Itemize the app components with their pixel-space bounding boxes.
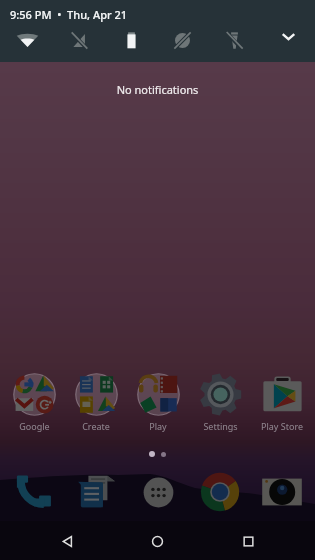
button[interactable]: Home — [125, 522, 189, 560]
button[interactable]: Create — [65, 373, 127, 432]
staticText: Play Store — [261, 420, 303, 432]
button[interactable]: Recents — [216, 522, 280, 560]
button[interactable]: Play Store — [251, 373, 313, 432]
button[interactable]: Chrome — [189, 470, 251, 514]
button[interactable]: Mobile data off — [64, 25, 94, 55]
staticText: No notifications — [0, 82, 315, 97]
staticText: Google — [19, 420, 50, 432]
staticText: Settings — [203, 420, 238, 432]
button[interactable]: Expand quick settings — [273, 21, 303, 51]
button[interactable]: Play — [127, 373, 189, 432]
button[interactable]: Phone — [3, 470, 65, 514]
button[interactable]: Back — [35, 522, 99, 560]
button[interactable]: All apps — [127, 470, 189, 514]
button[interactable]: Messages — [65, 470, 127, 514]
button[interactable]: Wi-Fi — [12, 25, 42, 55]
button[interactable]: Google — [3, 373, 65, 432]
staticText: Play — [149, 420, 167, 432]
button[interactable]: Settings — [189, 373, 251, 432]
button[interactable]: Flashlight off — [219, 25, 249, 55]
staticText: 9:56 PM • Thu, Apr 21 — [10, 7, 128, 22]
staticText: Create — [82, 420, 110, 432]
button[interactable]: Camera — [251, 470, 313, 514]
button[interactable]: Battery — [116, 25, 146, 55]
button[interactable]: Do not disturb off — [167, 25, 197, 55]
